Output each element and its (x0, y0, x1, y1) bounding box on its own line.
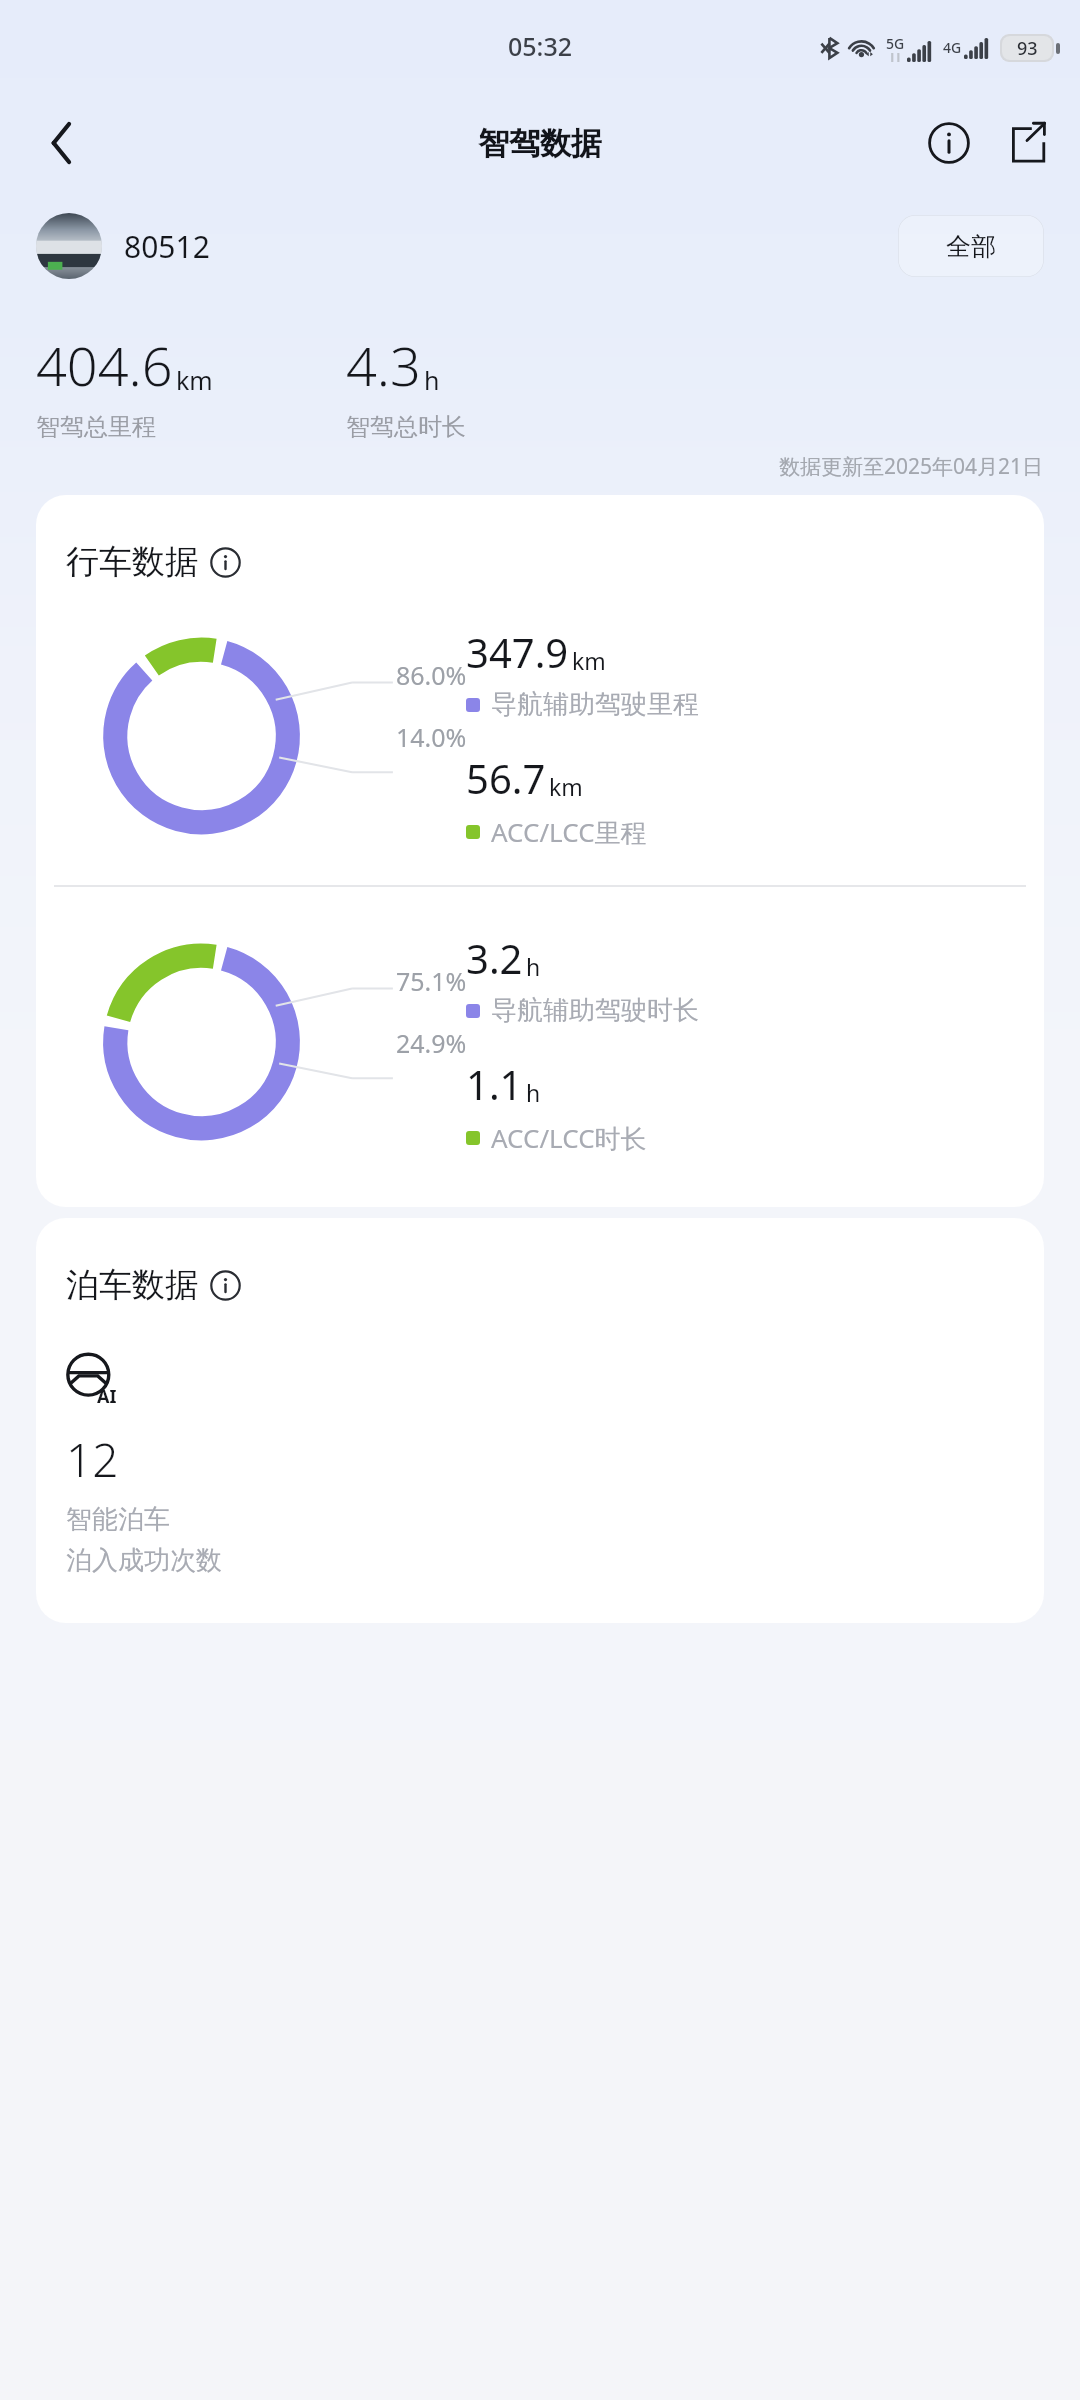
staticText: 75.1% (396, 964, 467, 998)
staticText: h (526, 1077, 541, 1108)
staticText: 347.9 (466, 625, 569, 679)
staticText: ACC/LCC时长 (491, 1120, 647, 1156)
staticText: 智能泊车 (66, 1503, 170, 1536)
staticText: 智驾数据 (478, 124, 602, 163)
staticText: 3.2 (466, 931, 523, 985)
staticText: 14.0% (396, 720, 467, 754)
button[interactable]: 行车数据 (66, 541, 241, 583)
staticText: 93 (1017, 36, 1038, 61)
staticText: 泊车数据 (66, 1264, 198, 1306)
staticText: 5G (886, 34, 905, 53)
staticText: ACC/LCC里程 (491, 814, 647, 850)
staticText: 05:32 (508, 29, 573, 63)
staticText: h (526, 951, 541, 982)
staticText: 智驾总里程 (36, 412, 156, 442)
staticText: 数据更新至2025年04月21日 (779, 452, 1044, 481)
button[interactable]: Share (996, 112, 1058, 174)
button[interactable]: Back (30, 111, 94, 175)
staticText: 24.9% (396, 1026, 467, 1060)
staticText: 56.7 (466, 751, 546, 805)
staticText: AI (97, 1384, 117, 1409)
staticText: 智驾总时长 (346, 412, 466, 442)
staticText: 4G (943, 38, 962, 57)
staticText: km (176, 363, 213, 397)
staticText: 1.1 (466, 1057, 523, 1111)
staticText: 全部 (946, 231, 996, 262)
staticText: km (572, 645, 606, 676)
staticText: 404.6 (36, 328, 173, 402)
staticText: 导航辅助驾驶里程 (491, 688, 699, 721)
button[interactable]: Info (918, 112, 980, 174)
staticText: 行车数据 (66, 541, 198, 583)
staticText: 80512 (124, 226, 210, 267)
staticText: 12 (66, 1428, 119, 1491)
button[interactable]: 泊车数据 (66, 1264, 241, 1306)
staticText: 泊入成功次数 (66, 1544, 222, 1577)
staticText: 导航辅助驾驶时长 (491, 994, 699, 1027)
staticText: h (424, 363, 440, 397)
button[interactable]: Vehicle avatar (36, 213, 102, 279)
staticText: 4.3 (346, 328, 421, 402)
staticText: 86.0% (396, 658, 467, 692)
staticText: km (549, 771, 583, 802)
button[interactable]: 全部 (898, 215, 1044, 277)
